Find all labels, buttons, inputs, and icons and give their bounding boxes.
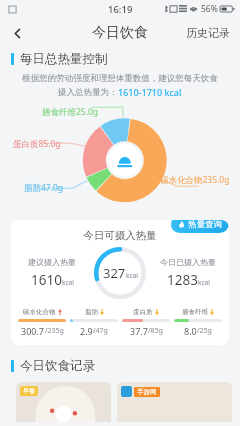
staticText: 脂肪47.0g [24, 182, 64, 194]
button[interactable]: 手游网 [117, 382, 232, 422]
staticText: 今日可摄入热量 [11, 229, 229, 242]
staticText: 膳食纤维 [182, 308, 208, 316]
staticText: 热量查询 [188, 220, 222, 230]
staticText: /85g [148, 326, 163, 336]
staticText: 膳食纤维25.0g [42, 106, 99, 118]
staticText: 37.7 [130, 325, 148, 337]
staticText: 1610-1710 kcal [118, 86, 182, 98]
staticText: 1610 [31, 271, 62, 289]
staticText: 手游网 [137, 388, 157, 396]
button[interactable]: 早餐 [16, 382, 111, 422]
staticText: 300.7 [21, 325, 45, 337]
staticText: 脂肪 [85, 308, 98, 316]
staticText: 56% [201, 3, 218, 15]
button[interactable]: Back [0, 18, 34, 48]
staticText: 1283 [167, 271, 198, 289]
staticText: kcal [126, 271, 138, 280]
staticText: 建议摄入热量 [28, 257, 76, 267]
staticText: /235g [45, 326, 64, 336]
staticText: 今日饮食 [92, 24, 148, 42]
staticText: kcal [198, 278, 210, 287]
staticText: 8.0 [184, 325, 197, 337]
staticText: /47g [93, 326, 108, 336]
staticText: kcal [62, 278, 74, 287]
button[interactable]: 热量查询 [171, 220, 229, 233]
staticText: 每日总热量控制 [20, 51, 108, 67]
staticText: 今日饮食记录 [20, 358, 95, 374]
staticText: 2.9 [80, 325, 93, 337]
staticText: /25g [197, 326, 212, 336]
staticText: 根据您的劳动强度和理想体重数值，建议您每天饮食 [22, 73, 218, 84]
staticText: 早餐 [23, 387, 35, 395]
button[interactable]: 历史记录 [176, 20, 240, 46]
staticText: 蛋白质 [133, 308, 153, 316]
staticText: 摄入总热量为： [58, 87, 118, 98]
staticText: 16:19 [108, 3, 133, 16]
staticText: 碳水化合物235.0g [160, 174, 230, 186]
staticText: 今日已摄入热量 [160, 257, 216, 267]
staticText: 碳水化合物 [23, 308, 56, 316]
staticText: 327 [103, 264, 126, 282]
staticText: 历史记录 [186, 26, 230, 40]
staticText: 蛋白质85.0g [13, 138, 61, 150]
